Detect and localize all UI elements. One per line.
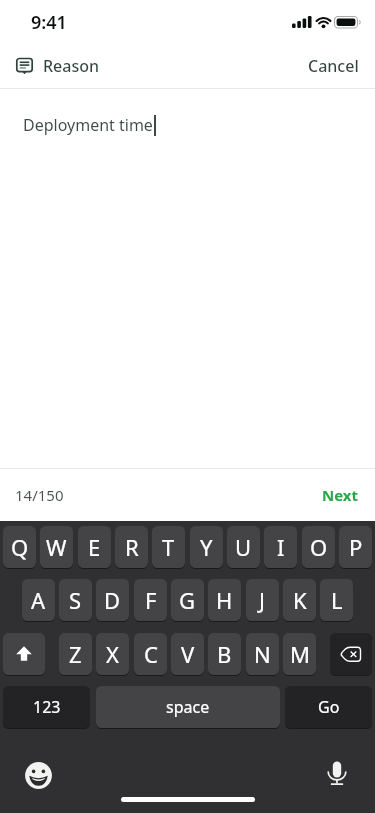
button[interactable]: O: [302, 526, 335, 568]
button[interactable]: M: [283, 633, 316, 675]
staticText: F: [145, 585, 157, 615]
button[interactable]: Y: [190, 526, 223, 568]
staticText: H: [216, 585, 233, 615]
button[interactable]: J: [246, 579, 279, 621]
button[interactable]: K: [283, 579, 316, 621]
staticText: E: [88, 532, 101, 562]
button[interactable]: B: [208, 633, 241, 675]
staticText: 123: [33, 696, 61, 718]
button[interactable]: [25, 762, 52, 789]
button[interactable]: U: [227, 526, 260, 568]
staticText: Y: [200, 532, 213, 562]
staticText: X: [106, 639, 119, 669]
button[interactable]: Deployment time: [0, 89, 375, 468]
button[interactable]: P: [339, 526, 372, 568]
staticText: L: [331, 585, 343, 615]
button[interactable]: N: [246, 633, 279, 675]
button[interactable]: L: [320, 579, 353, 621]
button[interactable]: S: [59, 579, 92, 621]
button[interactable]: H: [208, 579, 241, 621]
button[interactable]: C: [134, 633, 167, 675]
staticText: J: [259, 585, 266, 615]
staticText: V: [181, 639, 195, 669]
staticText: Next: [322, 485, 359, 505]
button[interactable]: V: [171, 633, 204, 675]
staticText: U: [235, 532, 252, 562]
staticText: B: [217, 639, 232, 669]
staticText: Reason: [43, 55, 100, 77]
button[interactable]: Z: [59, 633, 92, 675]
staticText: Z: [69, 639, 82, 669]
staticText: Go: [318, 696, 340, 718]
staticText: O: [310, 532, 328, 562]
button[interactable]: Reason: [0, 55, 100, 77]
staticText: K: [293, 585, 307, 615]
staticText: A: [31, 585, 46, 615]
staticText: 14/150: [15, 485, 64, 505]
staticText: T: [162, 532, 175, 562]
button[interactable]: F: [134, 579, 167, 621]
button[interactable]: [327, 761, 347, 786]
button[interactable]: E: [78, 526, 111, 568]
button[interactable]: Q: [3, 526, 36, 568]
staticText: Deployment time: [23, 114, 153, 136]
staticText: space: [166, 696, 210, 718]
staticText: I: [277, 532, 285, 562]
button[interactable]: I: [264, 526, 297, 568]
button[interactable]: Go: [285, 686, 372, 728]
button[interactable]: X: [96, 633, 129, 675]
staticText: S: [69, 585, 82, 615]
staticText: D: [104, 585, 121, 615]
button[interactable]: W: [40, 526, 73, 568]
staticText: W: [46, 532, 67, 562]
staticText: Q: [11, 532, 29, 562]
staticText: P: [349, 532, 363, 562]
button[interactable]: Next: [322, 485, 375, 505]
staticText: R: [125, 532, 139, 562]
button[interactable]: [330, 633, 372, 675]
staticText: G: [179, 585, 196, 615]
button[interactable]: T: [152, 526, 185, 568]
staticText: M: [290, 639, 310, 669]
button[interactable]: space: [96, 686, 280, 728]
button[interactable]: A: [22, 579, 55, 621]
staticText: C: [144, 639, 158, 669]
button[interactable]: [3, 633, 45, 675]
staticText: N: [254, 639, 271, 669]
button[interactable]: R: [115, 526, 148, 568]
staticText: Cancel: [308, 55, 359, 77]
button[interactable]: G: [171, 579, 204, 621]
button[interactable]: Cancel: [308, 55, 375, 77]
button[interactable]: D: [96, 579, 129, 621]
staticText: 9:41: [31, 10, 67, 35]
button[interactable]: 123: [3, 686, 90, 728]
